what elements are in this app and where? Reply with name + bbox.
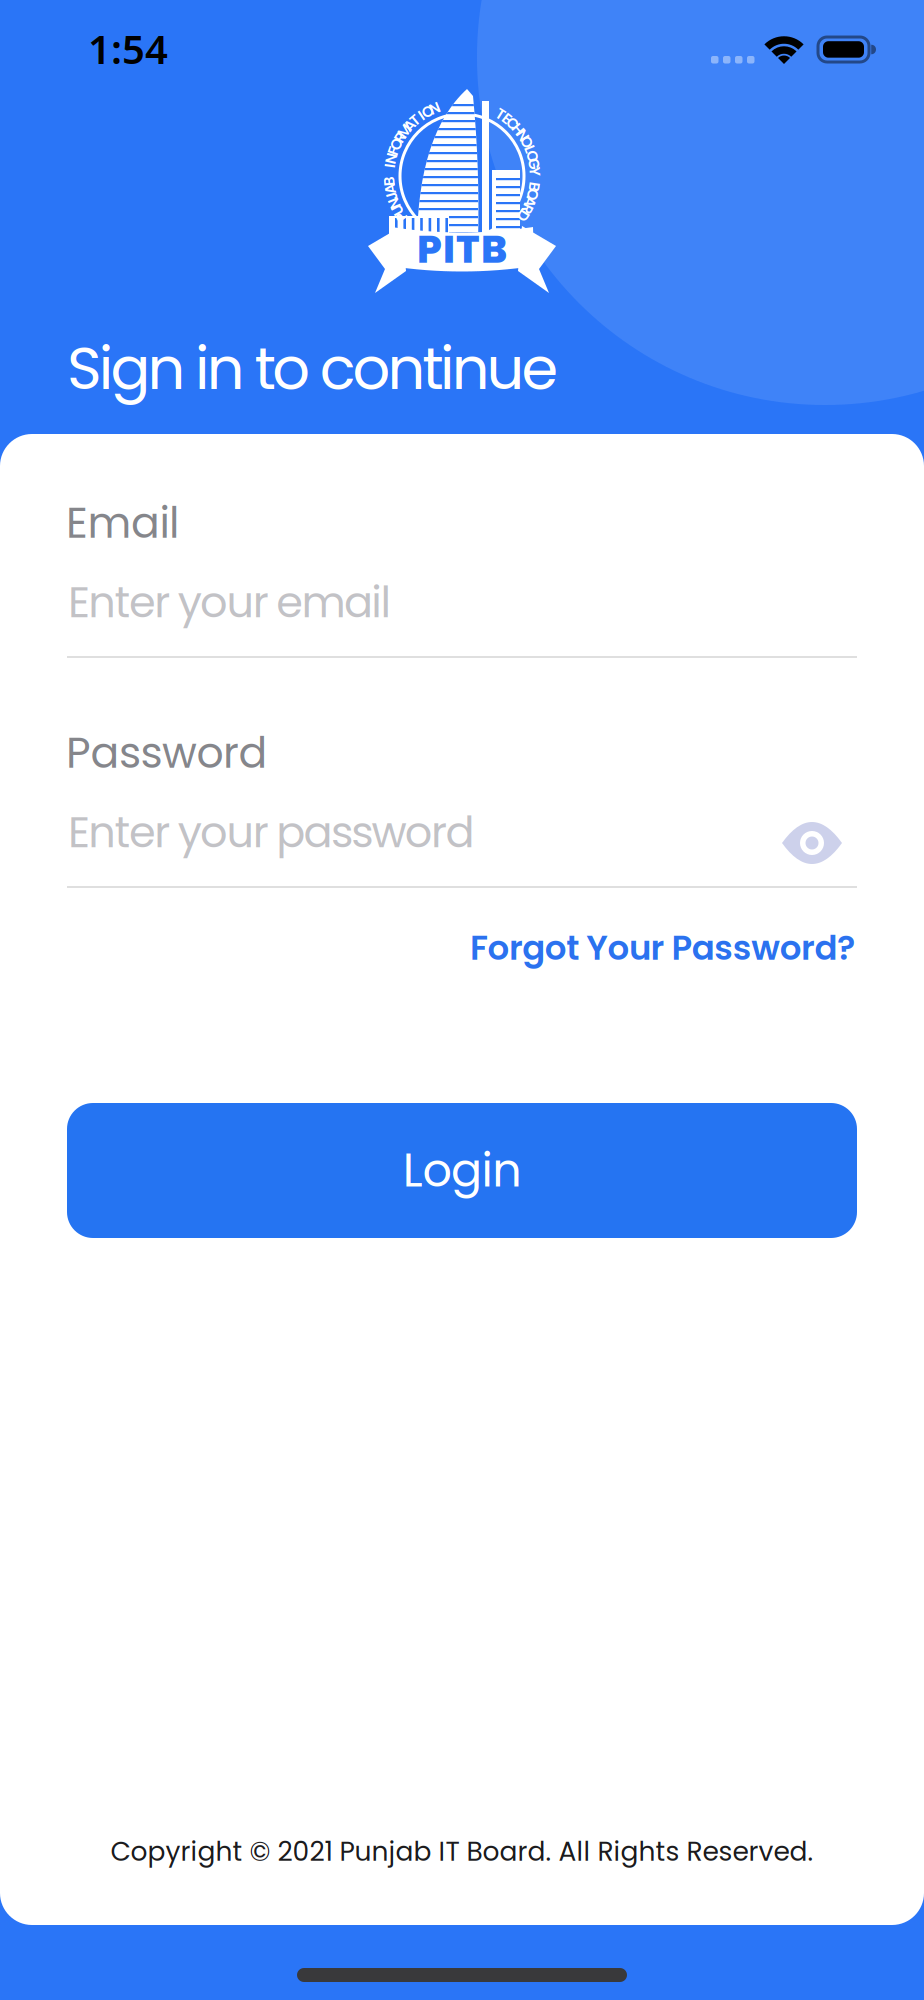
staticText: Y xyxy=(530,161,540,182)
staticText: N xyxy=(389,193,400,214)
staticText: I xyxy=(388,155,392,176)
staticText: T xyxy=(411,110,420,131)
staticText: O xyxy=(527,184,539,205)
staticText: Sign in to continue xyxy=(67,327,558,410)
staticText: Enter your email xyxy=(68,572,391,632)
staticText: J xyxy=(387,186,396,207)
staticText: Copyright © 2021 Punjab IT Board. All Ri… xyxy=(110,1833,813,1870)
staticText: 1:54 xyxy=(88,22,168,75)
staticText: E xyxy=(503,108,511,129)
staticText: A xyxy=(404,115,415,136)
staticText: B xyxy=(529,177,539,198)
staticText: M xyxy=(398,121,411,142)
staticText: N xyxy=(429,98,440,119)
staticText: PITB xyxy=(417,222,507,276)
button[interactable]: Enter your password xyxy=(67,799,857,894)
button[interactable]: Forgot Your Password? xyxy=(470,924,855,972)
staticText: N xyxy=(386,148,397,169)
staticText: F xyxy=(389,140,397,161)
staticText: U xyxy=(392,200,402,221)
staticText: G xyxy=(528,153,540,174)
staticText: O xyxy=(526,146,538,167)
staticText: B xyxy=(384,171,394,192)
staticText: Enter your password xyxy=(68,802,474,862)
staticText: O xyxy=(521,132,533,153)
staticText: I xyxy=(419,105,423,126)
staticText: Login xyxy=(403,1138,521,1203)
staticText: Email xyxy=(66,493,179,552)
staticText: A xyxy=(525,191,536,212)
button[interactable]: Show password xyxy=(772,812,852,874)
staticText: Forgot Your Password? xyxy=(470,924,855,972)
button[interactable]: Login xyxy=(67,1103,857,1238)
staticText: C xyxy=(507,113,519,134)
staticText: Password xyxy=(66,723,267,782)
staticText: O xyxy=(422,101,434,122)
staticText: N xyxy=(517,125,528,146)
staticText: O xyxy=(390,133,402,154)
staticText: D xyxy=(518,205,529,226)
staticText xyxy=(387,163,391,184)
staticText: H xyxy=(513,119,524,140)
staticText: T xyxy=(496,104,505,125)
staticText: A xyxy=(385,178,396,199)
staticText: P xyxy=(397,206,406,227)
staticText: R xyxy=(395,127,405,148)
button[interactable]: Enter your email xyxy=(67,569,857,664)
staticText xyxy=(533,169,537,190)
staticText: L xyxy=(526,139,533,160)
staticText: R xyxy=(522,199,532,220)
